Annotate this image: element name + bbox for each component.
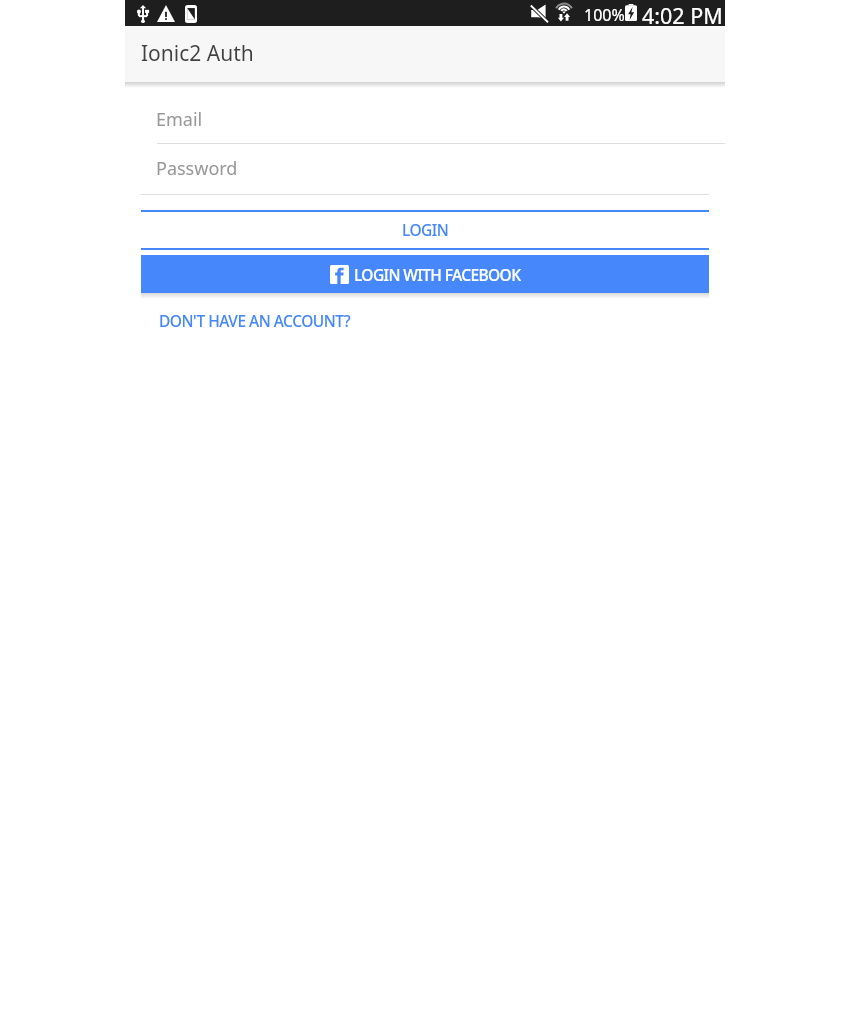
button[interactable]: DON'T HAVE AN ACCOUNT?: [141, 303, 371, 337]
button[interactable]: Facebook: [141, 255, 709, 293]
staticText: Email: [156, 107, 203, 132]
other: Facebook: [330, 265, 349, 284]
staticText: LOGIN WITH FACEBOOK: [354, 264, 521, 285]
button[interactable]: Email: [141, 86, 709, 144]
button[interactable]: Password: [141, 144, 709, 195]
staticText: Password: [156, 156, 238, 181]
staticText: Ionic2 Auth: [141, 39, 254, 68]
staticText: LOGIN: [402, 219, 449, 240]
staticText: 4:02 PM: [642, 1, 723, 27]
staticText: 100%: [584, 4, 625, 26]
staticText: DON'T HAVE AN ACCOUNT?: [159, 310, 351, 331]
button[interactable]: LOGIN: [141, 210, 709, 250]
